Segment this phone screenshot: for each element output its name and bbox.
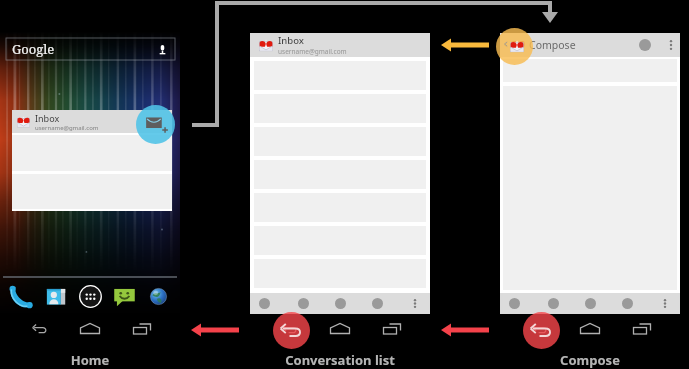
button[interactable]: Compose [500, 33, 680, 57]
staticText: Inbox [278, 34, 304, 47]
button[interactable]: Recents [124, 316, 160, 342]
button[interactable]: Labels [585, 298, 596, 309]
button[interactable]: Delete [298, 298, 309, 309]
staticText: Home [0, 351, 180, 369]
button[interactable]: Back [522, 316, 558, 342]
staticText: Conversation list [250, 351, 430, 369]
button[interactable]: Browser [145, 283, 172, 310]
button[interactable]: Labels [335, 298, 346, 309]
button[interactable]: Google search [6, 38, 175, 60]
button[interactable]: Home [322, 316, 358, 342]
button[interactable]: Back [272, 316, 308, 342]
button[interactable]: Recents [624, 316, 660, 342]
button[interactable]: Home [572, 316, 608, 342]
button[interactable]: Compose new message [136, 105, 175, 144]
button[interactable]: Recents [374, 316, 410, 342]
button[interactable]: Archive [509, 298, 520, 309]
staticText: Compose [529, 38, 576, 52]
button[interactable]: More options [663, 33, 679, 57]
button[interactable]: Back [22, 316, 58, 342]
button[interactable] [12, 135, 172, 171]
button[interactable]: Mark unread [372, 298, 383, 309]
button[interactable]: Phone [8, 283, 35, 310]
button[interactable]: More options [657, 293, 673, 314]
button[interactable]: Navigate up [496, 28, 533, 65]
staticText: username@gmail.com [278, 47, 347, 56]
button[interactable]: Send [639, 39, 651, 51]
staticText: Compose [500, 351, 680, 369]
button[interactable]: Inbox [250, 33, 430, 57]
button[interactable]: Mark unread [622, 298, 633, 309]
button[interactable] [503, 59, 677, 82]
button[interactable]: Messaging [111, 283, 138, 310]
button[interactable]: Delete [548, 298, 559, 309]
staticText: Inbox [35, 112, 60, 124]
button[interactable]: Archive [259, 298, 270, 309]
staticText: username@gmail.com [35, 124, 99, 132]
button[interactable]: Apps [77, 283, 104, 310]
button[interactable]: Inbox [12, 110, 172, 133]
button[interactable]: Home [72, 316, 108, 342]
button[interactable]: More options [407, 293, 423, 314]
button[interactable]: Back [523, 312, 560, 349]
button[interactable]: People [42, 283, 69, 310]
staticText: Google [12, 40, 55, 58]
button[interactable]: Back [273, 312, 310, 349]
